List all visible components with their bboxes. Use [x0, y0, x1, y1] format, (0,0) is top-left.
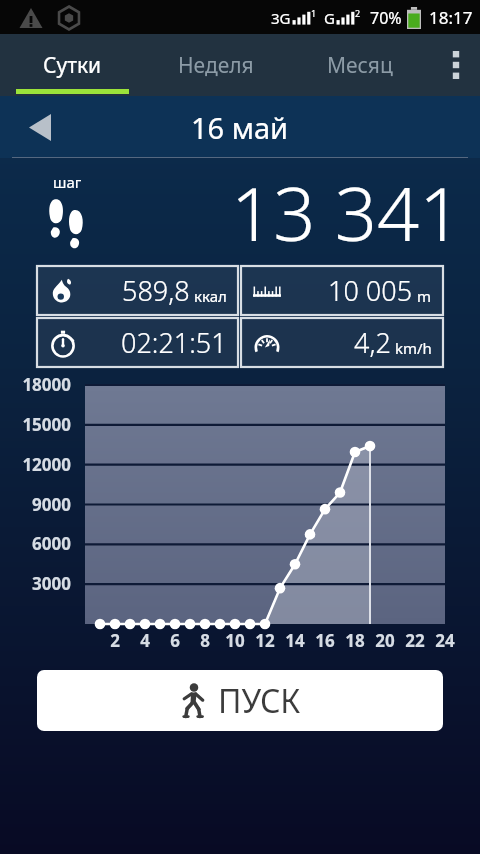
- staticText: ккал: [194, 286, 227, 306]
- staticText: 12: [245, 629, 285, 652]
- staticText: Сутки: [43, 51, 102, 80]
- staticText: 4: [125, 629, 165, 652]
- staticText: 2: [355, 7, 361, 19]
- staticText: 3G: [271, 8, 291, 28]
- staticText: 10: [215, 629, 255, 652]
- staticText: m: [417, 286, 432, 306]
- button[interactable]: ПУСК: [37, 670, 443, 731]
- staticText: шаг: [53, 172, 82, 192]
- button[interactable]: Duration: [37, 318, 238, 367]
- staticText: 6: [155, 629, 195, 652]
- button[interactable]: Previous day: [14, 101, 66, 153]
- staticText: 3000: [0, 572, 71, 595]
- staticText: 4,2: [354, 324, 391, 361]
- button[interactable]: Месяц: [288, 34, 432, 96]
- staticText: 18000: [0, 373, 71, 396]
- button[interactable]: Distance: [241, 266, 443, 315]
- staticText: 9000: [0, 493, 71, 516]
- staticText: 13 341: [231, 162, 462, 263]
- staticText: km/h: [395, 338, 432, 358]
- button[interactable]: Calories burned: [37, 266, 238, 315]
- button[interactable]: Average speed: [241, 318, 443, 367]
- staticText: 15000: [0, 413, 71, 436]
- staticText: Неделя: [178, 51, 254, 80]
- staticText: 12000: [0, 453, 71, 476]
- staticText: 589,8: [122, 272, 190, 309]
- staticText: 8: [185, 629, 225, 652]
- staticText: 16: [305, 629, 345, 652]
- staticText: 02:21:51: [121, 324, 227, 361]
- staticText: 70%: [370, 7, 402, 29]
- button[interactable]: Сутки: [0, 34, 144, 96]
- staticText: Месяц: [327, 51, 393, 80]
- button[interactable]: Неделя: [144, 34, 288, 96]
- staticText: G: [324, 8, 335, 28]
- staticText: 20: [365, 629, 405, 652]
- staticText: 22: [395, 629, 435, 652]
- staticText: 24: [425, 629, 465, 652]
- staticText: 18:17: [429, 6, 473, 29]
- staticText: 16 май: [191, 108, 289, 147]
- staticText: 2: [95, 629, 135, 652]
- staticText: 18: [335, 629, 375, 652]
- staticText: 1: [311, 7, 317, 19]
- button[interactable]: More options: [432, 34, 480, 96]
- staticText: 10 005: [328, 272, 413, 309]
- staticText: ПУСК: [218, 679, 301, 723]
- staticText: 14: [275, 629, 315, 652]
- staticText: 6000: [0, 532, 71, 555]
